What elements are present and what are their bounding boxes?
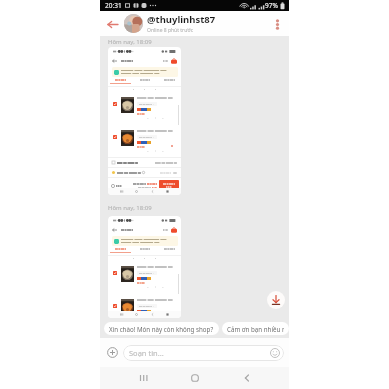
button[interactable]: Xin chào! Món này còn không shop? [104, 322, 219, 335]
staticText: Cảm ơn bạn nhiều nhé! [227, 325, 284, 333]
staticText: @thuylinhst87 [147, 13, 216, 26]
button[interactable]: Shared screenshot of shopping cart [108, 47, 181, 195]
staticText: 97% [265, 1, 278, 10]
other: Emoji [270, 348, 280, 358]
button[interactable]: Soạn tin... [123, 345, 284, 361]
button[interactable]: Back [237, 368, 257, 388]
staticText: Hôm nay, 18:09 [108, 204, 152, 212]
button[interactable] [159, 180, 179, 191]
staticText: Xin chào! Món này còn không shop? [109, 325, 214, 333]
staticText: Online 8 phút trước [147, 27, 194, 34]
button[interactable]: Back [104, 16, 120, 32]
staticText: 20:31 [105, 1, 122, 10]
staticText: Hôm nay, 18:09 [108, 38, 152, 46]
button[interactable]: Cảm ơn bạn nhiều nhé! [222, 322, 289, 335]
button[interactable]: More options [270, 17, 284, 31]
button[interactable]: Add attachment [105, 345, 120, 360]
button[interactable]: Recents [132, 368, 152, 388]
button[interactable]: Shared screenshot of shopping cart [108, 216, 181, 318]
button[interactable]: Download [267, 291, 285, 309]
staticText: Soạn tin... [129, 348, 164, 358]
button[interactable]: Home [185, 368, 205, 388]
button[interactable]: Profile picture [124, 14, 143, 33]
